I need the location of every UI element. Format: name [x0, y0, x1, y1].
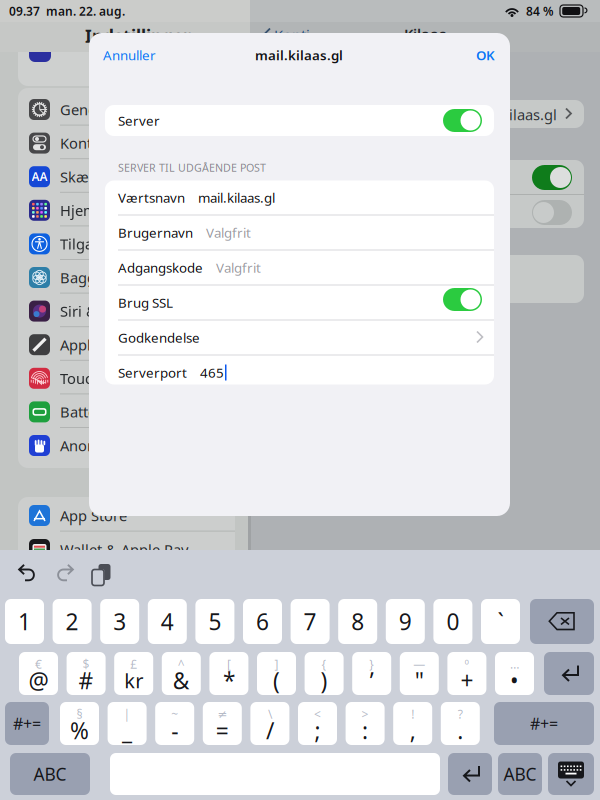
- staticText: 09.37: [9, 3, 40, 19]
- staticText: Anonymitet: [60, 436, 139, 455]
- button[interactable]: }: [352, 652, 391, 695]
- button[interactable]: ABC: [10, 753, 90, 795]
- button[interactable]: §: [60, 702, 99, 745]
- button[interactable]: 6: [243, 599, 282, 644]
- button[interactable]: #+=: [494, 702, 594, 745]
- staticText: ABC: [503, 762, 536, 785]
- staticText: Siri & Søg: [60, 301, 127, 321]
- button[interactable]: —: [400, 652, 439, 695]
- button[interactable]: 3: [100, 599, 139, 644]
- staticText: &: [173, 665, 190, 695]
- button[interactable]: Undo: [17, 562, 38, 583]
- staticText: ≠: [217, 707, 227, 721]
- staticText: 84 %: [526, 3, 554, 19]
- staticText: 1: [18, 606, 31, 636]
- staticText: man. 22. aug.: [46, 3, 125, 19]
- staticText: Baggrund: [60, 268, 129, 287]
- button[interactable]: Annuller: [103, 44, 156, 66]
- button[interactable]: !: [393, 702, 432, 745]
- button[interactable]: 1: [5, 599, 44, 644]
- button[interactable]: Serverport: [105, 355, 494, 389]
- staticText: Hjemmeskærm og dock: [60, 201, 226, 220]
- button[interactable]: Server: [105, 105, 494, 136]
- staticText: Kontrolcenter: [60, 133, 154, 153]
- staticText: @: [28, 665, 48, 695]
- staticText: {: [322, 656, 327, 672]
- button[interactable]: Paste: [88, 561, 108, 584]
- button[interactable]: \: [250, 702, 289, 745]
- button[interactable]: >: [346, 702, 385, 745]
- button[interactable]: €: [19, 652, 58, 695]
- staticText: 6: [256, 606, 269, 636]
- staticText: /: [266, 715, 274, 745]
- button[interactable]: Redo: [53, 562, 74, 583]
- staticText: Værtsnavn: [118, 189, 185, 206]
- button[interactable]: 0: [433, 599, 472, 644]
- button[interactable]: `: [481, 599, 520, 644]
- button[interactable]: Brugernavn: [105, 215, 494, 249]
- button[interactable]: ?: [441, 702, 480, 745]
- staticText: 5: [208, 606, 221, 636]
- button[interactable]: ≠: [203, 702, 242, 745]
- button[interactable]: ~: [155, 702, 194, 745]
- staticText: AA: [31, 169, 47, 185]
- button[interactable]: 7: [291, 599, 330, 644]
- staticText: 465: [200, 364, 224, 381]
- staticText: ;: [314, 715, 320, 745]
- button[interactable]: 8: [338, 599, 377, 644]
- button[interactable]: #+=: [5, 702, 49, 745]
- button[interactable]: 4: [148, 599, 187, 644]
- button[interactable]: ^: [162, 652, 201, 695]
- staticText: <: [314, 706, 321, 722]
- staticText: mail.kilaas.gl: [198, 189, 275, 206]
- button[interactable]: $: [67, 652, 106, 695]
- button[interactable]: ABC: [498, 753, 542, 795]
- staticText: Brug SSL: [118, 294, 173, 311]
- staticText: SERVER TIL UDGÅENDE POST: [118, 160, 266, 175]
- button[interactable]: 5: [195, 599, 234, 644]
- staticText: 4: [161, 606, 174, 636]
- button[interactable]: Return: [448, 753, 492, 795]
- staticText: Batteri: [60, 402, 106, 422]
- staticText: Valgfrit: [216, 259, 261, 276]
- staticText: ^: [178, 656, 185, 672]
- button[interactable]: 9: [386, 599, 425, 644]
- staticText: ]: [274, 656, 278, 672]
- staticText: *: [223, 665, 235, 695]
- button[interactable]: Brug SSL: [105, 285, 494, 319]
- button[interactable]: ]: [257, 652, 296, 695]
- button[interactable]: <: [298, 702, 337, 745]
- staticText: (: [273, 665, 280, 695]
- button[interactable]: 2: [53, 599, 92, 644]
- button[interactable]: Return: [544, 652, 594, 695]
- button[interactable]: [: [209, 652, 248, 695]
- button[interactable]: {: [305, 652, 344, 695]
- staticText: ?: [458, 706, 463, 722]
- button[interactable]: Godkendelse: [105, 320, 494, 354]
- button[interactable]: º: [447, 652, 486, 695]
- button[interactable]: Adgangskode: [105, 250, 494, 284]
- staticText: º: [464, 656, 469, 672]
- staticText: Indstillinger: [85, 24, 191, 47]
- staticText: 8: [351, 606, 364, 636]
- button[interactable]: …: [495, 652, 534, 695]
- staticText: ,: [410, 715, 416, 745]
- staticText: Apple Pencil: [60, 335, 144, 354]
- staticText: App Store: [60, 506, 127, 525]
- button[interactable]: OK: [476, 44, 495, 66]
- staticText: +: [460, 665, 473, 695]
- staticText: kilaas.gl: [501, 105, 557, 124]
- button[interactable]: Værtsnavn: [105, 180, 494, 214]
- button[interactable]: Delete: [530, 599, 594, 644]
- button[interactable]: £: [114, 652, 153, 695]
- button[interactable]: |: [108, 702, 147, 745]
- staticText: Adgangskode: [118, 259, 203, 276]
- staticText: }: [369, 656, 374, 672]
- staticText: Valgfrit: [206, 224, 251, 241]
- staticText: £: [130, 656, 137, 672]
- staticText: >: [362, 706, 369, 722]
- button[interactable]: Hide keyboard: [548, 753, 594, 795]
- staticText: Tilgængelighed: [60, 234, 167, 254]
- staticText: Generelt: [60, 100, 119, 119]
